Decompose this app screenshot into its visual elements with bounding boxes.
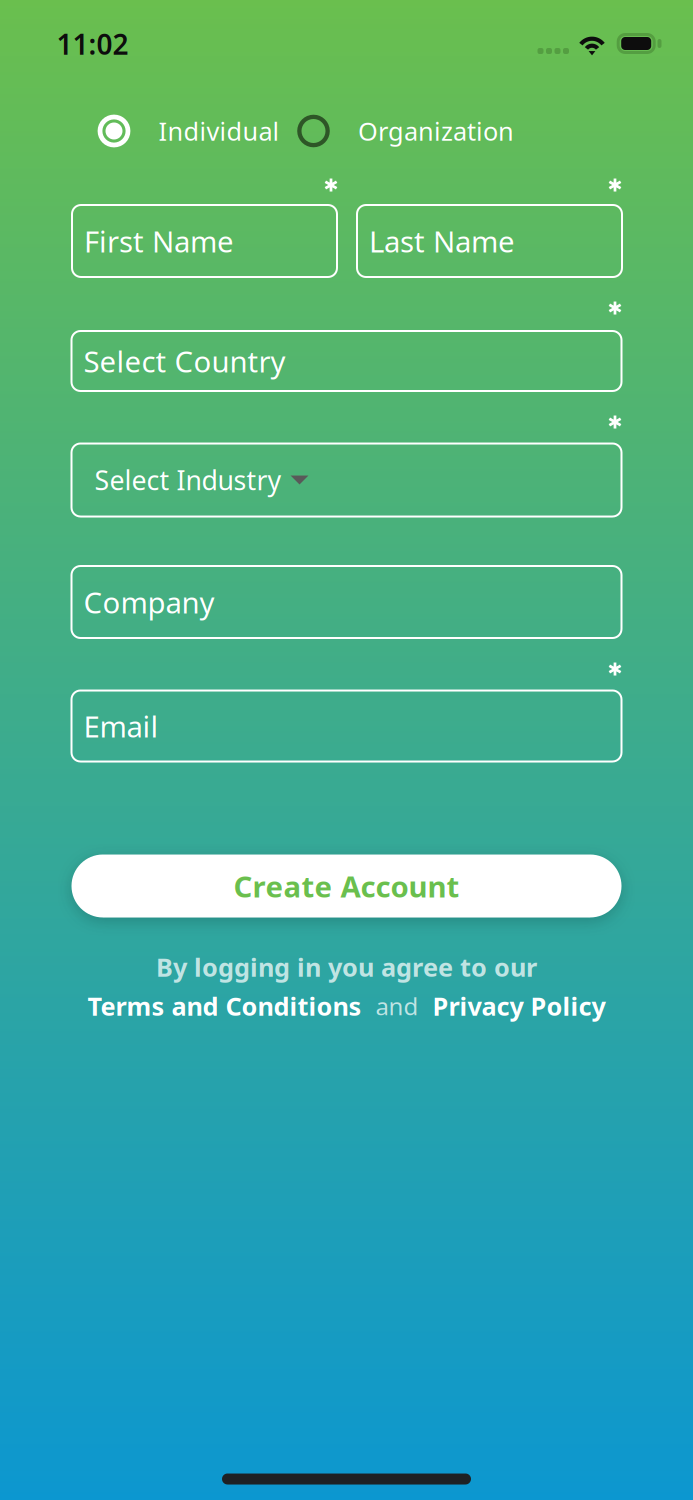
button[interactable]: Create Account xyxy=(71,854,621,917)
staticText: Organization xyxy=(358,114,514,148)
staticText: By logging in you agree to our xyxy=(156,950,537,984)
staticText: Email xyxy=(83,706,158,745)
staticText: and xyxy=(375,990,418,1022)
staticText: 11:02 xyxy=(56,25,128,63)
staticText: Privacy Policy xyxy=(432,989,605,1023)
staticText: Individual xyxy=(158,114,279,148)
button[interactable]: Individual xyxy=(97,114,279,148)
staticText: First Name xyxy=(84,221,234,260)
staticText: Terms and Conditions xyxy=(87,989,361,1023)
button[interactable]: Company xyxy=(71,566,621,638)
button[interactable]: First Name xyxy=(72,205,337,277)
staticText: Select Industry xyxy=(94,462,281,498)
button[interactable]: Terms and Conditions xyxy=(87,989,361,1023)
staticText: Company xyxy=(83,582,214,621)
button[interactable]: Email xyxy=(71,690,621,761)
button[interactable]: Organization xyxy=(297,114,514,148)
staticText: Last Name xyxy=(369,221,515,260)
staticText: Create Account xyxy=(233,866,459,905)
button[interactable]: Select Industry xyxy=(71,443,621,516)
button[interactable]: Select Country xyxy=(71,331,621,391)
button[interactable]: Last Name xyxy=(357,205,622,277)
staticText: Select Country xyxy=(83,341,285,380)
button[interactable]: Privacy Policy xyxy=(432,989,605,1023)
